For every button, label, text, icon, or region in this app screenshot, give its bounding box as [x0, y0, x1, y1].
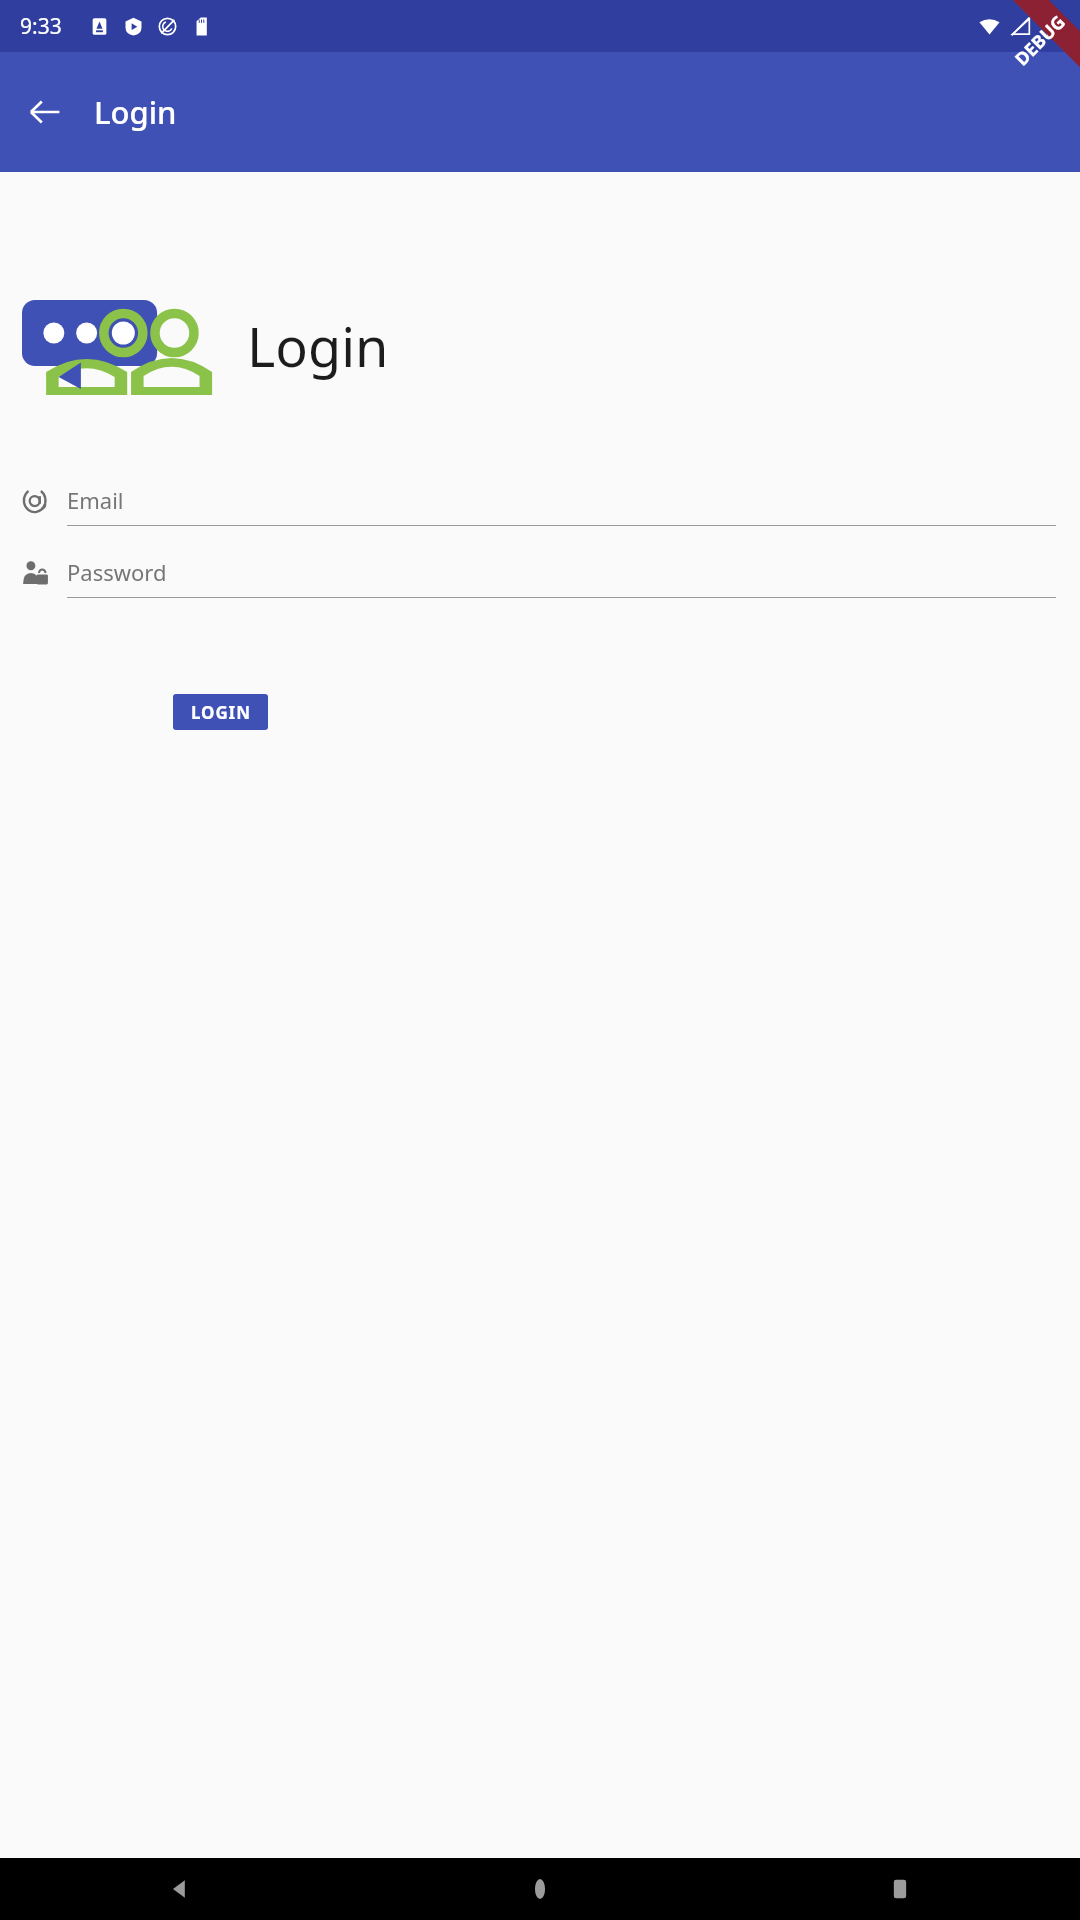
- staticText: Login: [94, 91, 177, 133]
- button[interactable]: Home: [360, 1858, 720, 1920]
- button[interactable]: Password: [0, 546, 1080, 598]
- button[interactable]: Recents: [720, 1858, 1080, 1920]
- staticText: Login: [247, 309, 389, 383]
- staticText: Email: [67, 485, 124, 515]
- button[interactable]: Email: [0, 474, 1080, 526]
- button[interactable]: Back: [14, 81, 76, 143]
- button[interactable]: LOGIN: [173, 694, 268, 730]
- staticText: 9:33: [20, 12, 62, 41]
- staticText: Password: [67, 557, 167, 587]
- staticText: DEBUG: [1009, 10, 1071, 71]
- staticText: LOGIN: [191, 701, 251, 724]
- button[interactable]: Back: [0, 1858, 360, 1920]
